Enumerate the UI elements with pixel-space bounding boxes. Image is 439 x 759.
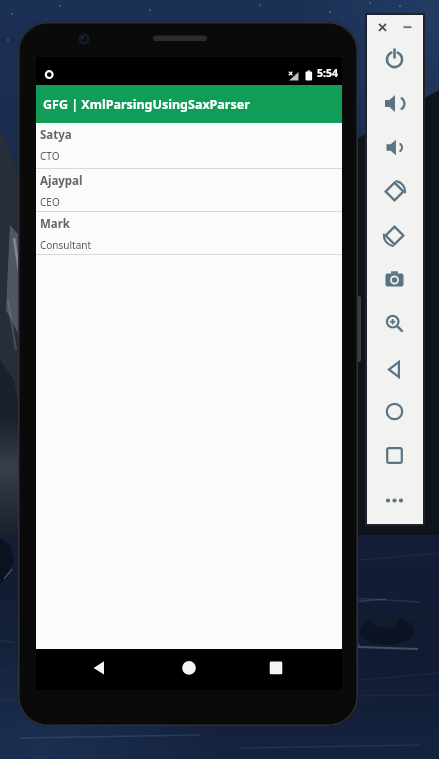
staticText: 5:54 bbox=[317, 66, 338, 80]
staticText: Satya bbox=[40, 127, 72, 143]
button[interactable] bbox=[177, 656, 201, 680]
button[interactable] bbox=[379, 354, 410, 385]
staticText: CTO bbox=[40, 149, 60, 163]
button[interactable]: Satya bbox=[36, 123, 342, 168]
staticText: Consultant bbox=[40, 238, 92, 252]
staticText: GFG | XmlParsingUsingSaxParser bbox=[43, 96, 250, 113]
staticText: CEO bbox=[40, 195, 60, 209]
staticText: Ajaypal bbox=[40, 173, 83, 189]
button[interactable] bbox=[87, 656, 111, 680]
button[interactable] bbox=[379, 88, 410, 119]
staticText: Mark bbox=[40, 216, 71, 232]
button[interactable]: Ajaypal bbox=[36, 169, 342, 211]
button[interactable] bbox=[379, 396, 410, 427]
button[interactable]: Mark bbox=[36, 212, 342, 254]
button[interactable] bbox=[375, 20, 390, 34]
button[interactable] bbox=[379, 485, 410, 516]
button[interactable] bbox=[379, 44, 410, 75]
button[interactable] bbox=[264, 656, 288, 680]
button[interactable] bbox=[379, 264, 410, 295]
button[interactable] bbox=[379, 308, 410, 339]
button[interactable] bbox=[379, 132, 410, 163]
button[interactable] bbox=[379, 440, 410, 471]
button[interactable] bbox=[400, 20, 415, 34]
button[interactable] bbox=[379, 220, 410, 251]
button[interactable] bbox=[379, 176, 410, 207]
